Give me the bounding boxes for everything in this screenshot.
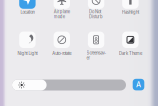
- staticText: Flashlight: [122, 10, 139, 15]
- staticText: Auto-rotate: [52, 51, 71, 56]
- button[interactable]: Auto brightness: [133, 79, 144, 90]
- button[interactable]: Flashlight: [122, 0, 139, 9]
- staticText: Airplane mode: [54, 9, 70, 19]
- staticText: Dark Theme: [119, 51, 142, 56]
- staticText: Do Not Disturb: [89, 9, 103, 19]
- button[interactable]: Location: [19, 0, 36, 9]
- button[interactable]: Screensaver: [88, 32, 104, 48]
- staticText: Night Light: [17, 51, 37, 56]
- staticText: Location: [20, 10, 34, 15]
- button[interactable]: Auto-rotate: [54, 32, 70, 48]
- button[interactable]: Dark Theme: [122, 32, 139, 48]
- button[interactable]: Brightness: [12, 79, 126, 90]
- staticText: A: [136, 80, 141, 89]
- button[interactable]: Do Not Disturb: [88, 0, 104, 9]
- button[interactable]: Airplane mode: [54, 0, 70, 9]
- staticText: Screensaver: [87, 50, 106, 60]
- button[interactable]: Night Light: [19, 32, 36, 48]
